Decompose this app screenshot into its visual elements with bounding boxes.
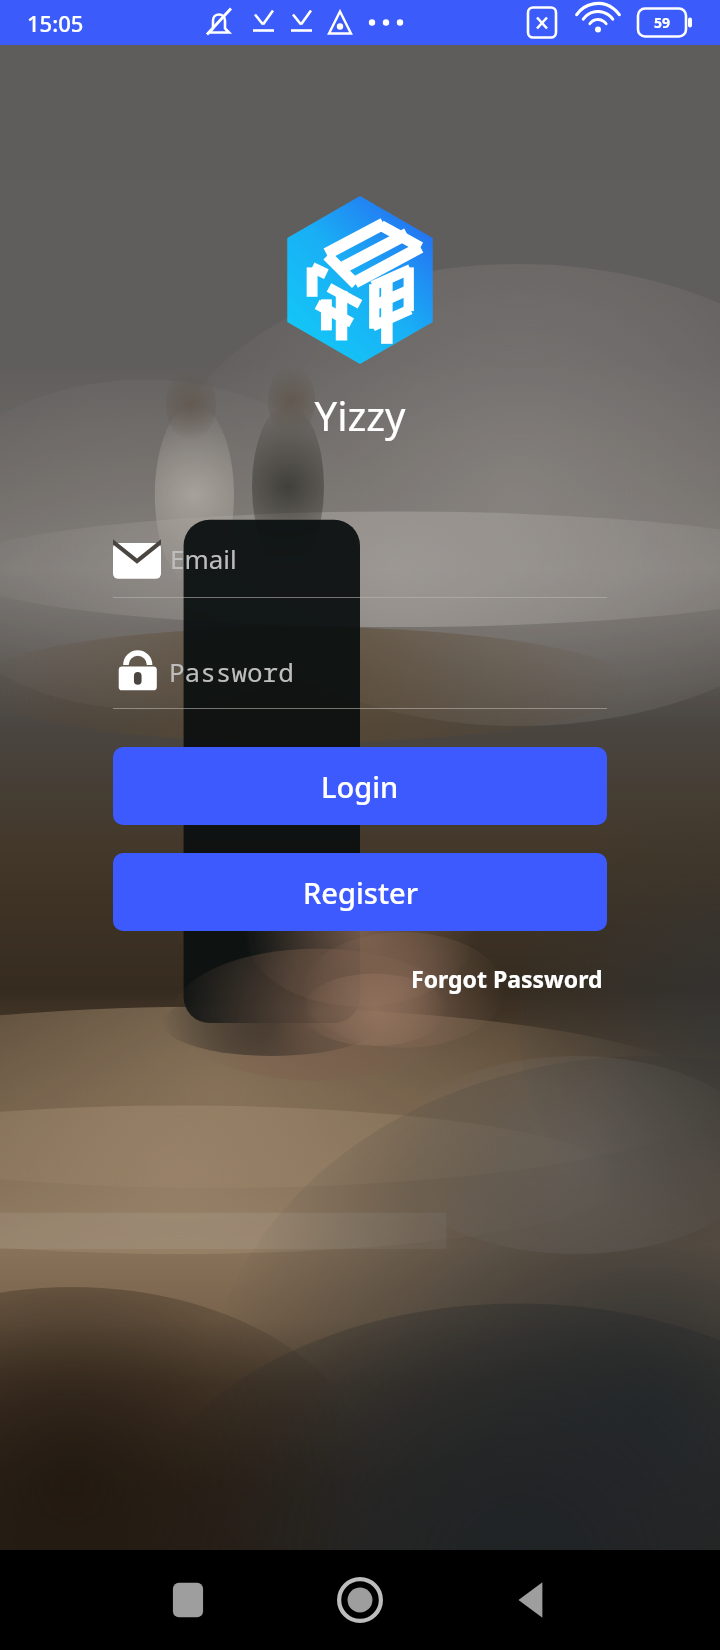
button[interactable]: Forgot Password xyxy=(407,959,607,998)
staticText: Register xyxy=(303,873,418,912)
staticText: Login xyxy=(321,767,399,806)
button[interactable]: Register xyxy=(113,853,607,931)
button[interactable]: Login xyxy=(113,747,607,825)
button[interactable]: Email xyxy=(113,537,607,598)
button[interactable]: Back xyxy=(506,1574,558,1626)
staticText: 15:05 xyxy=(27,8,84,38)
staticText: Forgot Password xyxy=(411,963,603,994)
staticText: 59 xyxy=(654,13,671,32)
button[interactable]: Password xyxy=(113,648,607,709)
staticText: Email xyxy=(170,541,237,576)
staticText: Password xyxy=(169,654,294,689)
button[interactable]: Recent apps xyxy=(162,1574,214,1626)
staticText: Yizzy xyxy=(0,388,720,442)
button[interactable]: Home xyxy=(331,1571,389,1629)
